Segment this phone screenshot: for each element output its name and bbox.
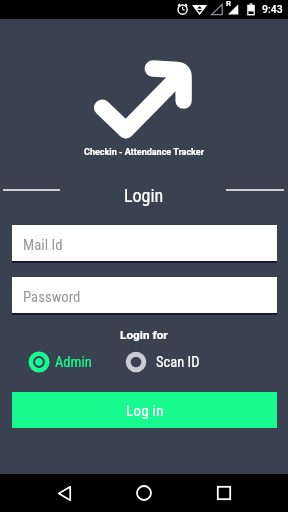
button[interactable]: Mail Id — [12, 225, 277, 263]
button[interactable]: Back — [44, 478, 84, 508]
button[interactable]: Admin — [27, 350, 92, 374]
button[interactable]: Password — [12, 277, 277, 315]
staticText: Mail Id — [23, 236, 63, 253]
button[interactable]: Scan ID — [124, 350, 200, 374]
staticText: Login for — [120, 328, 168, 342]
staticText: R — [226, 0, 232, 8]
button[interactable]: Recent apps — [204, 478, 244, 508]
staticText: Scan ID — [156, 354, 200, 371]
staticText: Login — [124, 185, 164, 206]
staticText: 9:43 — [262, 3, 283, 15]
staticText: Log in — [126, 402, 164, 420]
button[interactable]: Home — [124, 478, 164, 508]
button[interactable]: Log in — [12, 392, 277, 428]
staticText: Password — [23, 288, 81, 305]
staticText: Checkin - Attendance Tracker — [84, 147, 204, 158]
staticText: Admin — [55, 354, 92, 371]
